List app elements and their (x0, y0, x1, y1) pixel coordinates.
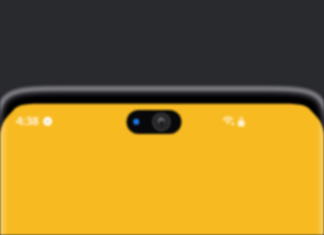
button[interactable]: Clock, 4:38 (14, 112, 42, 128)
button[interactable]: Status: Wi-Fi and battery (220, 112, 248, 130)
staticText: 4:38 (16, 113, 39, 127)
button[interactable]: Notification (42, 114, 56, 128)
